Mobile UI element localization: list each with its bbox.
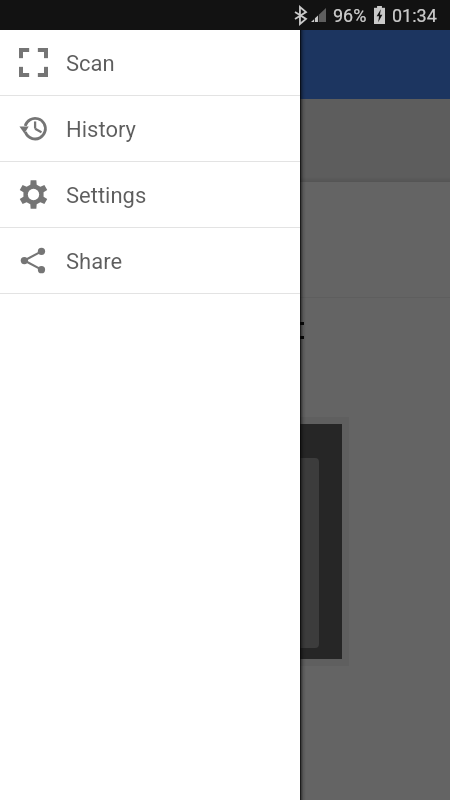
button[interactable]: Close navigation drawer bbox=[0, 30, 450, 800]
staticText: Settings bbox=[66, 183, 147, 209]
staticText: Scan bbox=[66, 51, 115, 77]
staticText: 96% bbox=[333, 5, 367, 26]
staticText: Share bbox=[66, 249, 123, 275]
staticText: 01:34 bbox=[392, 5, 437, 26]
staticText: History bbox=[66, 117, 136, 143]
button[interactable]: Scan bbox=[0, 30, 300, 95]
button[interactable]: Settings bbox=[0, 162, 300, 227]
button[interactable]: History bbox=[0, 96, 300, 161]
button[interactable]: Share bbox=[0, 228, 300, 293]
